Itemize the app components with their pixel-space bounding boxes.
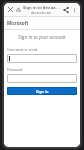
staticText: Username or email <box>7 47 38 52</box>
staticText: Sign in to dev.azure.com <box>23 5 59 11</box>
staticText: Sign in to your account <box>18 34 66 40</box>
button[interactable]: Sign in <box>7 87 77 95</box>
staticText: Microsoft <box>7 20 29 26</box>
button[interactable]: More options <box>70 6 78 14</box>
staticText: dev.azure.com <box>31 11 52 15</box>
staticText: Sign in <box>36 89 49 94</box>
button[interactable] <box>7 74 77 83</box>
staticText: Password <box>7 67 23 72</box>
button[interactable]: Share <box>61 5 70 14</box>
button[interactable] <box>7 54 77 63</box>
button[interactable]: Close <box>6 5 15 14</box>
